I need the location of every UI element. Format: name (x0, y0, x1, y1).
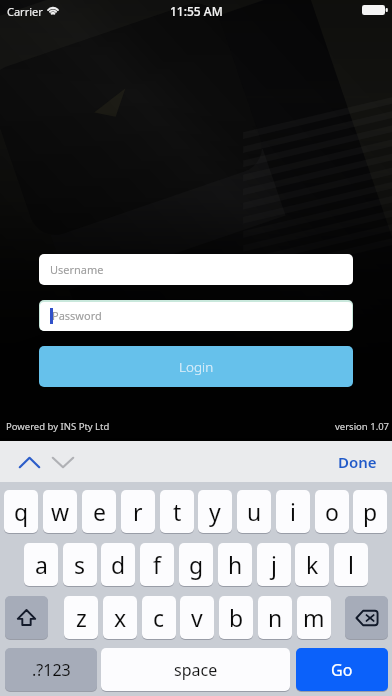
staticText: space (174, 659, 218, 681)
button[interactable]: n (258, 596, 292, 639)
button[interactable]: u (237, 490, 271, 533)
button[interactable]: b (219, 596, 253, 639)
button[interactable]: p (353, 490, 387, 533)
staticText: Go (331, 659, 353, 681)
staticText: p (363, 496, 378, 527)
button[interactable]: l (334, 543, 368, 586)
staticText: h (228, 549, 243, 580)
staticText: l (348, 549, 354, 580)
button[interactable]: r (121, 490, 155, 533)
button[interactable]: y (198, 490, 232, 533)
staticText: o (325, 496, 339, 527)
button[interactable]: Go (296, 648, 388, 691)
button[interactable]: i (276, 490, 310, 533)
button[interactable]: f (140, 543, 174, 586)
button[interactable]: a (24, 543, 58, 586)
button[interactable]: Password (39, 300, 353, 331)
staticText: e (93, 496, 106, 527)
staticText: i (290, 496, 296, 527)
staticText: u (247, 496, 262, 527)
staticText: .?123 (32, 659, 71, 681)
button[interactable]: m (297, 596, 331, 639)
button[interactable]: h (218, 543, 252, 586)
button[interactable]: .?123 (5, 648, 97, 691)
staticText: x (114, 602, 127, 633)
staticText: z (76, 602, 87, 633)
button[interactable]: g (179, 543, 213, 586)
button[interactable]: Backspace (345, 596, 388, 639)
button[interactable]: t (160, 490, 194, 533)
button[interactable]: z (64, 596, 98, 639)
button[interactable]: Login (39, 346, 353, 387)
button[interactable]: v (180, 596, 214, 639)
button[interactable]: Username (39, 254, 353, 285)
staticText: f (153, 549, 161, 580)
staticText: t (173, 496, 182, 527)
button[interactable]: q (4, 490, 38, 533)
button[interactable]: e (82, 490, 116, 533)
staticText: m (303, 602, 325, 633)
button[interactable]: o (315, 490, 349, 533)
button[interactable]: w (43, 490, 77, 533)
staticText: s (74, 549, 86, 580)
staticText: q (14, 496, 29, 527)
staticText: r (133, 496, 143, 527)
button[interactable]: Done (330, 441, 384, 482)
staticText: k (306, 549, 319, 580)
staticText: Done (338, 452, 377, 472)
staticText: version 1.07 (335, 420, 390, 433)
button[interactable]: x (103, 596, 137, 639)
staticText: d (111, 549, 126, 580)
button[interactable]: s (63, 543, 97, 586)
button[interactable]: c (142, 596, 176, 639)
staticText: 11:55 AM (170, 3, 223, 19)
staticText: Powered by INS Pty Ltd (6, 420, 110, 433)
staticText: Login (179, 358, 214, 376)
staticText: a (35, 549, 48, 580)
staticText: v (191, 602, 203, 633)
staticText: y (209, 496, 221, 527)
staticText: g (189, 549, 204, 580)
staticText: Carrier (7, 4, 43, 19)
button[interactable]: Shift (5, 596, 48, 639)
staticText: n (268, 602, 283, 633)
staticText: c (153, 602, 165, 633)
staticText: b (229, 602, 244, 633)
button[interactable]: Next field (44, 447, 82, 477)
button[interactable]: k (295, 543, 329, 586)
staticText: j (271, 549, 277, 580)
button[interactable]: space (101, 648, 290, 691)
button[interactable]: d (101, 543, 135, 586)
button[interactable]: Previous field (10, 447, 48, 477)
button[interactable]: j (257, 543, 291, 586)
staticText: Password (52, 308, 102, 323)
staticText: w (51, 496, 70, 527)
staticText: Username (50, 262, 104, 277)
